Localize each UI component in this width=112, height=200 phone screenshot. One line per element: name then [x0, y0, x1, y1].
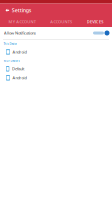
- staticText: This Device: [3, 42, 17, 46]
- staticText: MY ACCOUNT: [8, 19, 36, 24]
- button[interactable]: Android: [0, 47, 112, 56]
- staticText: Your Devices: [3, 59, 19, 63]
- staticText: DEVICES: [87, 19, 103, 24]
- staticText: Android: [13, 75, 27, 80]
- staticText: Settings: [12, 7, 32, 14]
- button[interactable]: Default: [0, 64, 112, 73]
- staticText: Android: [13, 49, 27, 54]
- button[interactable]: MY ACCOUNT: [0, 17, 44, 26]
- staticText: ACCOUNTS: [50, 19, 72, 24]
- staticText: Allow Notifications: [4, 30, 36, 36]
- button[interactable]: Back: [3, 5, 12, 16]
- button[interactable]: Android: [0, 73, 112, 82]
- button[interactable]: DEVICES: [78, 17, 112, 26]
- button[interactable]: ACCOUNTS: [44, 17, 78, 26]
- staticText: Default: [12, 66, 24, 71]
